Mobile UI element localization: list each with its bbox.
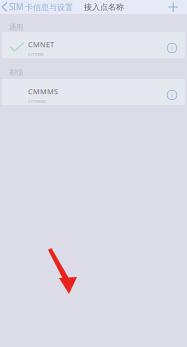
staticText: i	[171, 44, 173, 52]
button[interactable]: Add APN	[168, 0, 187, 14]
staticText: i	[171, 91, 173, 99]
staticText: SIM 卡信息与设置	[9, 1, 73, 12]
staticText: cmnet	[28, 50, 44, 58]
staticText: 通用	[9, 23, 23, 32]
staticText: CMNET	[28, 39, 54, 49]
staticText: CMMMS	[28, 86, 58, 96]
button[interactable]: More info about CMMMS	[167, 84, 185, 100]
staticText: cmwap	[28, 97, 46, 105]
staticText: 接入点名称	[84, 2, 124, 12]
button[interactable]: CMNET	[2, 32, 185, 58]
button[interactable]: CMMMS	[2, 79, 185, 105]
button[interactable]: More info about CMNET	[167, 37, 185, 53]
button[interactable]: SIM 卡信息与设置	[0, 0, 73, 14]
staticText: 彩信	[9, 68, 23, 77]
